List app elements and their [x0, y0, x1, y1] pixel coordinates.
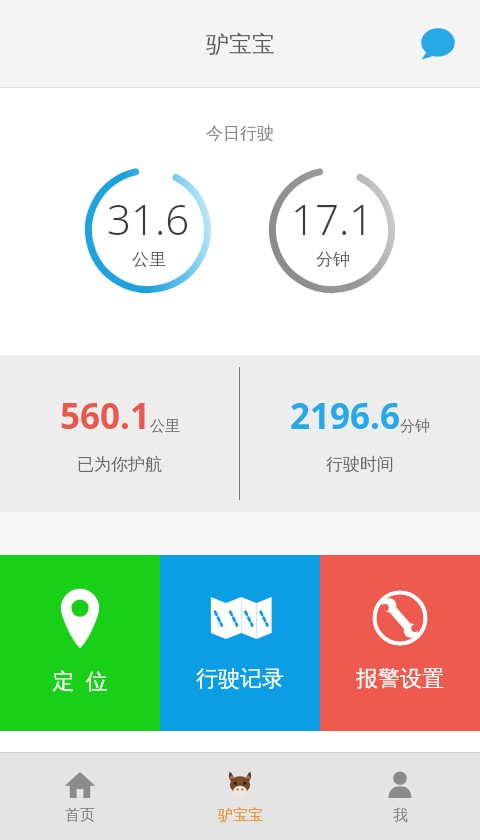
staticText: 分钟 [316, 249, 350, 270]
staticText: 首页 [65, 806, 95, 825]
button[interactable]: 行驶记录 [160, 555, 320, 731]
staticText: 报警设置 [356, 665, 444, 693]
staticText: 已为你护航 [77, 454, 162, 475]
button[interactable]: 定 位 [0, 555, 160, 731]
staticText: 驴宝宝 [218, 806, 263, 825]
button[interactable]: 驴宝宝 [160, 753, 320, 840]
staticText: 分钟 [400, 417, 430, 436]
staticText: 公里 [132, 249, 166, 270]
staticText: 560.1 [60, 392, 150, 440]
staticText: 我 [393, 806, 408, 825]
staticText: 31.6 [107, 190, 190, 247]
staticText: 行驶记录 [196, 665, 284, 693]
button[interactable]: 2196.6 [240, 355, 480, 512]
button[interactable]: 我 [320, 753, 480, 840]
staticText: 定 位 [52, 665, 108, 695]
button[interactable]: 报警设置 [320, 555, 480, 731]
button[interactable]: 首页 [0, 753, 160, 840]
staticText: 公里 [150, 417, 180, 436]
staticText: 2196.6 [290, 392, 400, 440]
staticText: 17.1 [291, 190, 374, 247]
button[interactable]: 560.1 [0, 355, 239, 512]
button[interactable]: Messages [414, 20, 462, 68]
staticText: 今日行驶 [206, 123, 274, 144]
staticText: 驴宝宝 [206, 30, 275, 59]
staticText: 行驶时间 [326, 454, 394, 475]
